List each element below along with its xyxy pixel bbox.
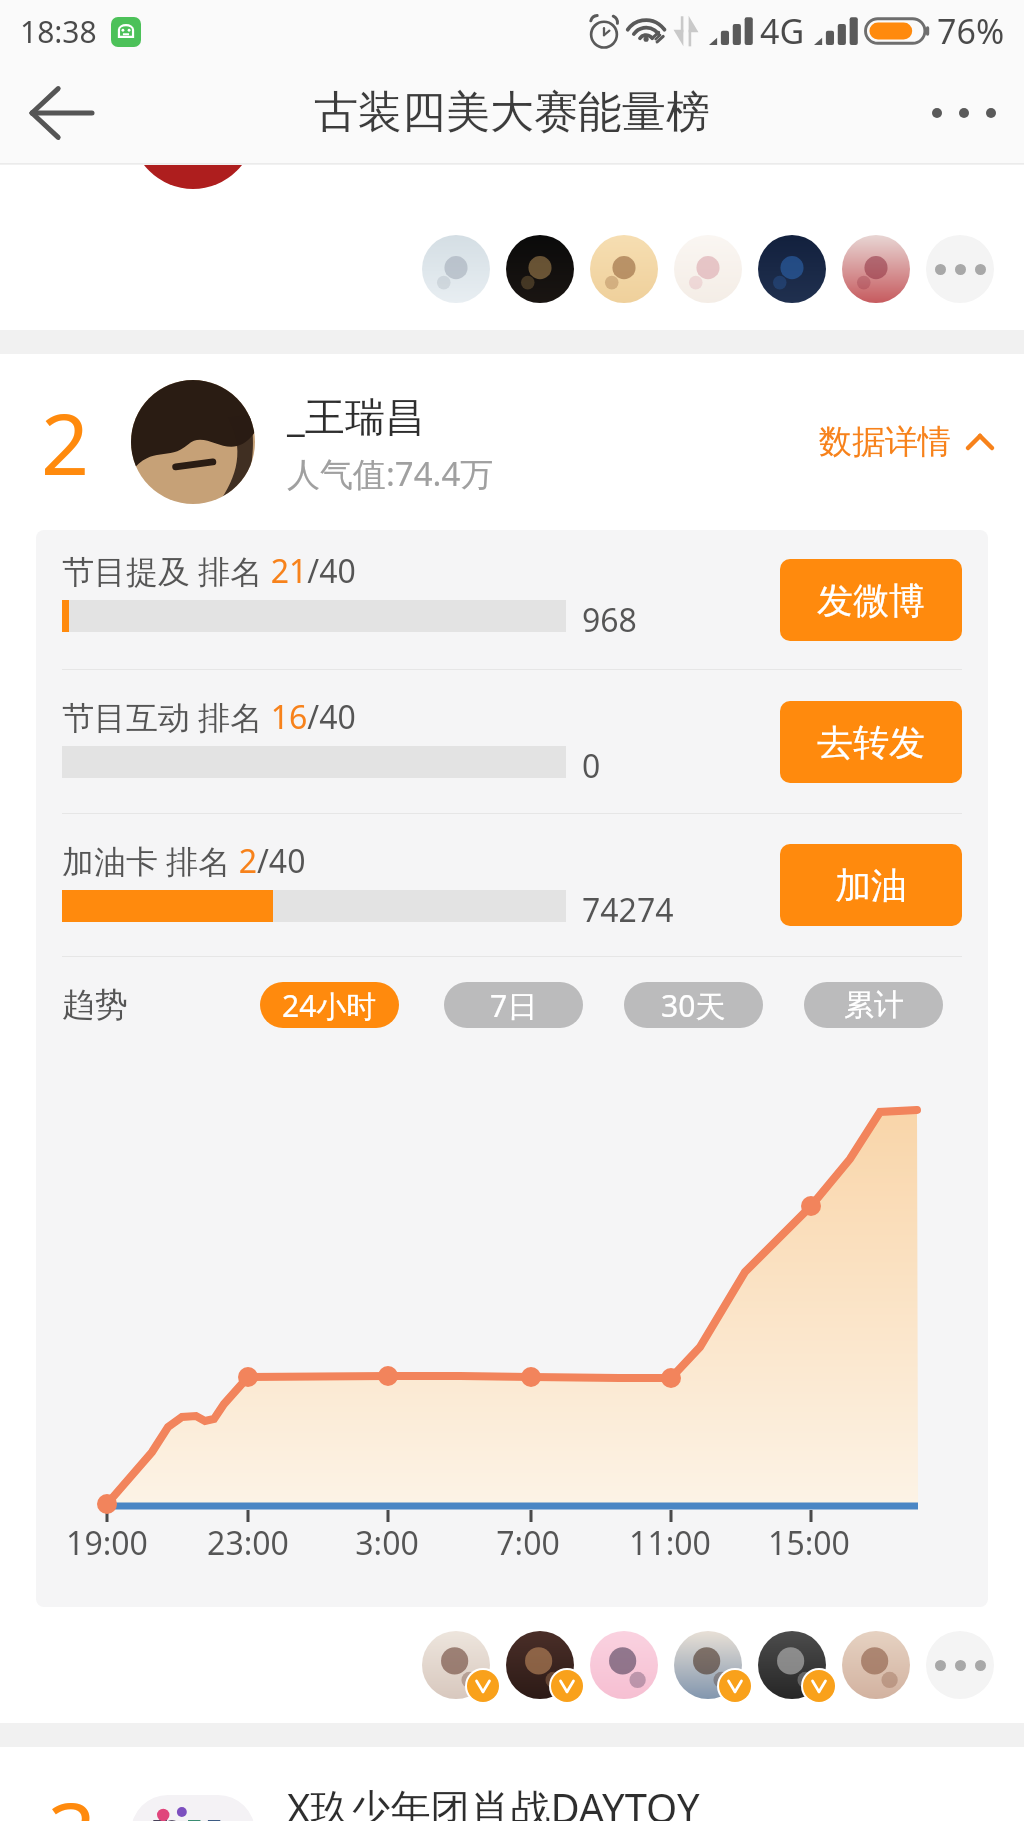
staticText: 4G (760, 8, 805, 54)
button[interactable] (674, 235, 742, 303)
button[interactable]: 去转发 (780, 701, 962, 783)
button[interactable]: 发微博 (780, 559, 962, 641)
staticText: 人气值:74.4万 (287, 451, 494, 496)
button[interactable]: More options (916, 65, 1012, 161)
button[interactable]: 累计 (804, 982, 943, 1028)
button[interactable]: 加油 (780, 844, 962, 926)
staticText: 发微博 (817, 578, 925, 623)
staticText: 0 (582, 744, 601, 788)
staticText: 18:38 (20, 11, 97, 52)
button[interactable] (506, 1631, 574, 1699)
staticText: 7日 (490, 985, 538, 1026)
staticText: 古装四美大赛能量榜 (314, 85, 710, 140)
button[interactable] (842, 235, 910, 303)
staticText: 7:00 (448, 1521, 608, 1565)
button[interactable] (590, 235, 658, 303)
staticText: 76% (937, 8, 1005, 54)
staticText: 3:00 (307, 1521, 467, 1565)
button[interactable] (422, 1631, 490, 1699)
button[interactable]: 7日 (444, 982, 583, 1028)
staticText: 趋势 (62, 984, 128, 1026)
button[interactable] (842, 1631, 910, 1699)
button[interactable] (422, 235, 490, 303)
staticText: 节目提及 排名 21/40 (62, 549, 356, 593)
staticText: 2 (41, 385, 90, 499)
staticText: 加油卡 排名 2/40 (62, 839, 306, 883)
button[interactable]: 30天 (624, 982, 763, 1028)
staticText: 24小时 (282, 985, 377, 1026)
button[interactable]: More (926, 235, 994, 303)
button[interactable]: 24小时 (260, 982, 399, 1028)
staticText: 23:00 (168, 1521, 328, 1565)
button[interactable] (590, 1631, 658, 1699)
staticText: 968 (582, 598, 637, 642)
staticText: 去转发 (817, 720, 925, 765)
staticText: 74274 (582, 888, 674, 932)
staticText: X玖少年团肖战DAYTOY (287, 1780, 700, 1821)
staticText: 加油 (835, 863, 907, 908)
button[interactable]: 数据详情 (819, 421, 994, 463)
staticText: _王瑞昌 (287, 388, 425, 443)
staticText: 3 (48, 1774, 97, 1821)
staticText: 30天 (661, 985, 726, 1026)
staticText: 19:00 (36, 1521, 187, 1565)
staticText: 11:00 (590, 1521, 750, 1565)
button[interactable] (674, 1631, 742, 1699)
button[interactable] (506, 235, 574, 303)
staticText: 15:00 (729, 1521, 889, 1565)
staticText: 数据详情 (819, 421, 951, 463)
staticText: 节目互动 排名 16/40 (62, 695, 356, 739)
button[interactable]: 2 (0, 354, 1024, 530)
button[interactable] (758, 235, 826, 303)
button[interactable]: More (926, 1631, 994, 1699)
button[interactable] (758, 1631, 826, 1699)
button[interactable]: Back (14, 65, 110, 161)
staticText: 累计 (844, 986, 904, 1024)
